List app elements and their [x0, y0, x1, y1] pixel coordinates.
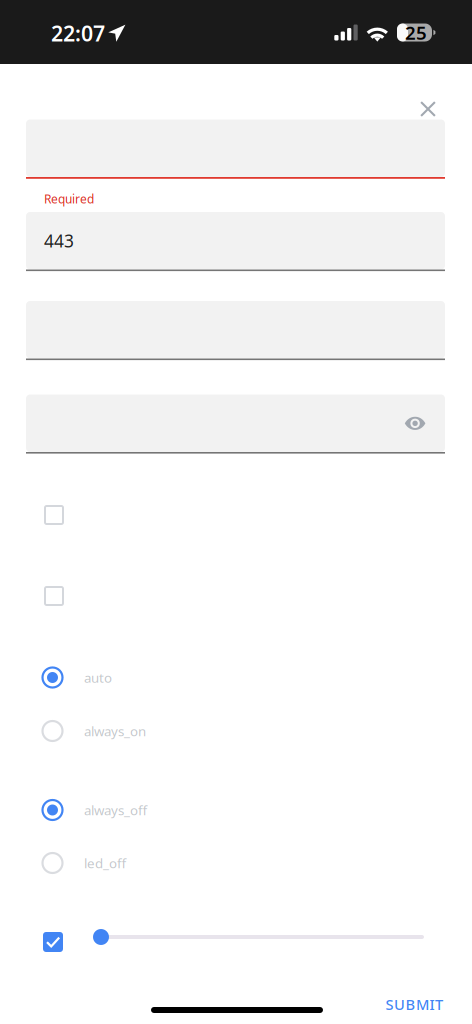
button[interactable]: always_off — [0, 795, 472, 825]
staticText: T — [435, 994, 443, 1014]
staticText: I — [429, 994, 434, 1014]
staticText: led_off — [84, 854, 126, 872]
staticText: B — [405, 994, 415, 1014]
staticText: auto — [84, 669, 112, 686]
staticText: always_on — [84, 722, 146, 740]
staticText: 22:07 — [51, 19, 105, 47]
staticText: always_off — [84, 801, 147, 819]
staticText: M — [416, 994, 429, 1014]
button[interactable]: always_on — [0, 716, 472, 746]
staticText: 443 — [44, 229, 74, 252]
button[interactable]: auto — [0, 662, 472, 692]
button[interactable]: S — [374, 986, 454, 1022]
staticText: 25 — [405, 20, 427, 45]
button[interactable]: led_off — [0, 848, 472, 878]
staticText: U — [394, 994, 405, 1014]
staticText: S — [385, 994, 393, 1014]
button[interactable]: Show password — [393, 405, 436, 442]
button[interactable]: Option checkbox — [33, 494, 75, 536]
button[interactable]: Enable — [32, 921, 74, 963]
button[interactable]: Close — [409, 90, 447, 128]
staticText: Required — [44, 191, 94, 207]
button[interactable]: Option checkbox — [33, 575, 75, 617]
